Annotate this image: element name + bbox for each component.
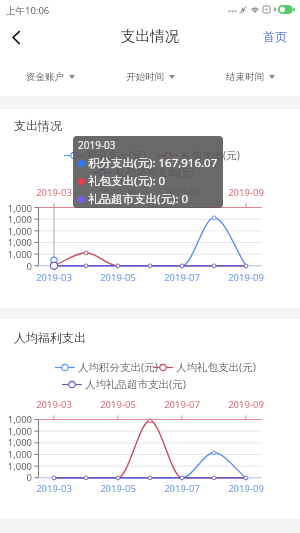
staticText: 人均礼包支出(元) [176,360,256,374]
staticText: 1,000 [2,202,32,215]
button[interactable]: Back [0,22,32,50]
button[interactable]: 开始时间 [100,65,200,89]
staticText: 人均福利支出 [14,330,86,345]
staticText: 2019-09 [224,271,268,284]
button[interactable]: 首页 [250,23,300,50]
staticText: 人均礼品超市支出(元) [85,377,186,391]
staticText: 礼品超市支出(元) [115,165,195,179]
staticText: 2019-05 [96,398,140,411]
staticText: 人均积分支出(元) [78,360,158,374]
staticText: 1,000 [2,448,32,461]
staticText: 2019-05 [96,271,140,284]
staticText: 2019-07 [160,186,204,199]
staticText: 2019-03 [32,398,76,411]
staticText: 2019-07 [160,482,204,495]
staticText: 礼包支出(元): 0 [88,173,166,189]
staticText: 2019-03 [32,482,76,495]
staticText: 2019-03 [78,138,116,152]
staticText: 0 [2,260,32,273]
staticText: 礼包支出(元) [181,148,240,162]
staticText: 1,000 [2,248,32,261]
staticText: 积分支出(元): 167,916.07 [88,155,218,171]
staticText: 1,000 [2,225,32,238]
staticText: 开始时间 [126,71,164,83]
staticText: 2019-03 [32,271,76,284]
staticText: 支出情况 [121,27,179,45]
staticText: 首页 [263,29,287,44]
staticText: 1,000 [2,213,32,226]
staticText: 1,000 [2,413,32,426]
button[interactable]: 结束时间 [200,65,300,89]
staticText: 上午10:06 [6,4,50,17]
staticText: 2019-09 [224,186,268,199]
button[interactable]: 资金账户 [0,65,100,89]
staticText: 2019-09 [224,482,268,495]
staticText: 1,000 [2,236,32,249]
staticText: 2019-07 [160,398,204,411]
staticText: 支出情况 [14,118,62,133]
staticText: 积分支出(元) [87,148,146,162]
staticText: 0 [2,471,32,484]
staticText: 结束时间 [226,71,264,83]
staticText: 2019-09 [224,398,268,411]
staticText: 2019-05 [96,186,140,199]
staticText: 2019-03 [32,186,76,199]
staticText: 资金账户 [26,71,64,83]
staticText: 礼品超市支出(元): 0 [88,191,189,207]
staticText: 2019-05 [96,482,140,495]
staticText: 1,000 [2,436,32,449]
staticText: 1,000 [2,425,32,438]
staticText: 1,000 [2,460,32,473]
staticText: 2019-07 [160,271,204,284]
